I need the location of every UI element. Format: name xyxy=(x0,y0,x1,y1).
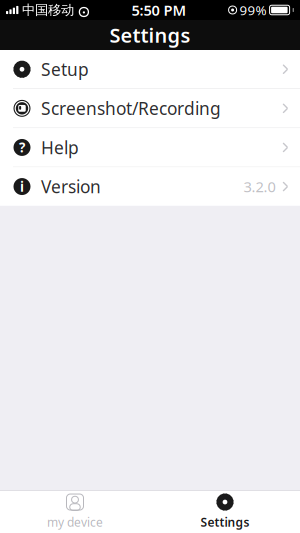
button[interactable]: Setup xyxy=(0,50,300,89)
staticText: Settings xyxy=(200,514,249,530)
staticText: Help xyxy=(41,136,79,159)
staticText: my device xyxy=(47,514,103,530)
staticText: 5:50 PM xyxy=(131,0,186,20)
staticText: Screenshot/Recording xyxy=(41,97,221,120)
button[interactable]: ? xyxy=(0,128,300,167)
button[interactable]: Settings xyxy=(150,488,300,533)
staticText: ? xyxy=(19,139,25,156)
button[interactable]: Screenshot/Recording xyxy=(0,89,300,128)
staticText: Version xyxy=(41,175,101,198)
staticText: Setup xyxy=(41,58,89,81)
button[interactable]: i xyxy=(0,167,300,206)
staticText: 3.2.0 xyxy=(244,177,276,196)
button[interactable]: my device xyxy=(0,488,150,533)
staticText: 中国移动 xyxy=(22,2,74,18)
staticText: Settings xyxy=(109,22,190,48)
staticText: 99% xyxy=(240,1,267,19)
staticText: i xyxy=(20,178,24,195)
